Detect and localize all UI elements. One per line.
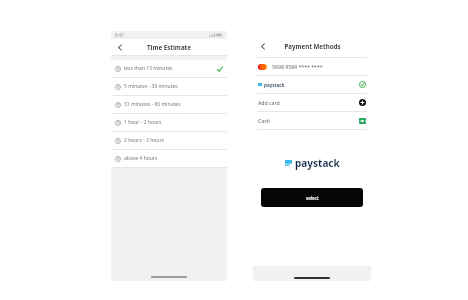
button[interactable]: 1 hour - 2 hours xyxy=(111,114,227,131)
button[interactable]: 5698 9584 **** **** xyxy=(253,58,371,75)
staticText: less than 15 minutes xyxy=(124,65,173,72)
staticText: 9:41 xyxy=(115,32,124,38)
button[interactable]: paystack xyxy=(253,76,371,93)
staticText: above 4 hours xyxy=(124,155,158,162)
staticText: Time Estimate xyxy=(147,43,191,51)
button[interactable]: Cash xyxy=(253,112,371,129)
staticText: Payment Methods xyxy=(284,42,341,50)
staticText: 1 hour - 2 hours xyxy=(124,119,162,126)
button[interactable]: 31 minutes - 60 minutes xyxy=(111,96,227,113)
staticText: 31 minutes - 60 minutes xyxy=(124,101,181,108)
staticText: select xyxy=(306,195,319,201)
button[interactable]: Back xyxy=(114,41,126,53)
staticText: paystack xyxy=(264,82,285,88)
staticText: paystack xyxy=(295,156,340,170)
button[interactable]: select xyxy=(261,188,363,207)
button[interactable]: 2 hours - 3 hours xyxy=(111,132,227,149)
staticText: Add card xyxy=(258,99,280,106)
button[interactable]: above 4 hours xyxy=(111,150,227,167)
button[interactable]: Back xyxy=(257,40,269,52)
staticText: 2 hours - 3 hours xyxy=(124,137,164,144)
button[interactable]: less than 15 minutes xyxy=(111,60,227,77)
button[interactable]: 5 minutes - 30 minutes xyxy=(111,78,227,95)
staticText: 5698 9584 **** **** xyxy=(272,63,323,70)
other: Selected xyxy=(359,81,366,88)
other: Cash xyxy=(359,118,366,124)
other: Add card xyxy=(359,99,366,106)
staticText: Cash xyxy=(258,117,270,124)
staticText: 5 minutes - 30 minutes xyxy=(124,83,178,90)
button[interactable]: Add card xyxy=(253,94,371,111)
